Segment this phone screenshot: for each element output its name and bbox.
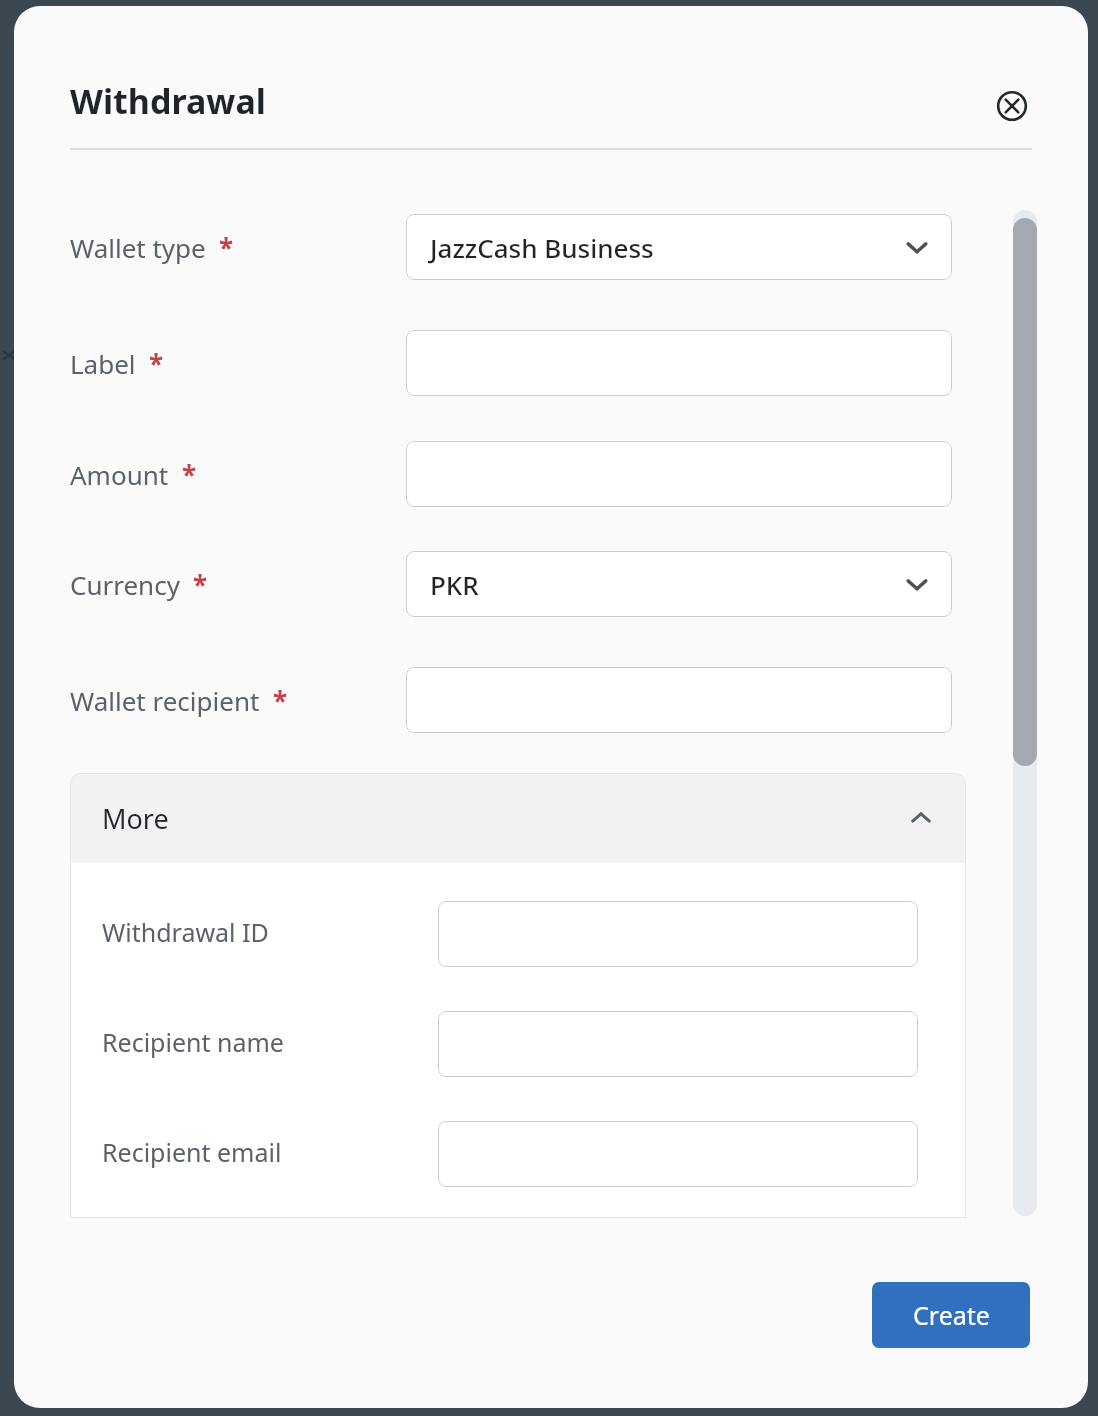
button[interactable] [406,441,952,507]
button[interactable]: Create [872,1282,1030,1348]
staticText: * [182,457,197,492]
staticText: Amount [70,457,169,492]
staticText: PKR [430,567,479,602]
staticText: Withdrawal ID [102,915,269,949]
staticText: Recipient name [102,1025,284,1059]
staticText: JazzCash Business [430,230,654,265]
staticText: Currency [70,567,180,602]
button[interactable]: PKR [406,551,952,617]
staticText: Label [70,346,136,381]
staticText: * [193,567,208,602]
staticText: Create [913,1298,990,1332]
button[interactable] [438,1011,918,1077]
staticText: * [219,230,234,265]
staticText: Wallet type [70,230,206,265]
staticText: Wallet recipient [70,683,260,718]
button[interactable] [1013,218,1037,766]
button[interactable]: JazzCash Business [406,214,952,280]
button[interactable] [406,667,952,733]
staticText: * [149,346,164,381]
button[interactable]: Close [984,78,1040,134]
button[interactable] [406,330,952,396]
staticText: * [273,683,288,718]
button[interactable] [438,1121,918,1187]
button[interactable] [438,901,918,967]
staticText: Withdrawal [70,78,266,124]
staticText: Recipient email [102,1135,282,1169]
button[interactable]: More [70,773,966,863]
staticText: More [102,800,169,837]
